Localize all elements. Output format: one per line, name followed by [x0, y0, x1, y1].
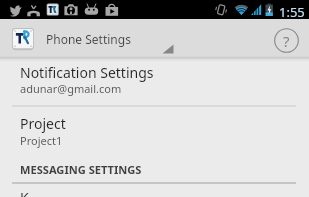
staticText: MESSAGING SETTINGS [20, 162, 142, 177]
staticText: K [20, 188, 29, 197]
staticText: 1:55 [279, 3, 305, 21]
button[interactable]: Help [274, 28, 299, 53]
staticText: ? [283, 31, 290, 51]
button[interactable]: Notification Settings [0, 58, 309, 104]
button[interactable]: Phone Settings [0, 19, 180, 58]
staticText: Notification Settings [20, 63, 154, 82]
button[interactable]: Project [0, 106, 309, 154]
staticText: Project1 [20, 133, 63, 148]
staticText: Phone Settings [46, 31, 131, 47]
staticText: Project [20, 114, 66, 133]
staticText: adunar@gmail.com [20, 81, 122, 96]
button[interactable]: K [0, 184, 309, 197]
